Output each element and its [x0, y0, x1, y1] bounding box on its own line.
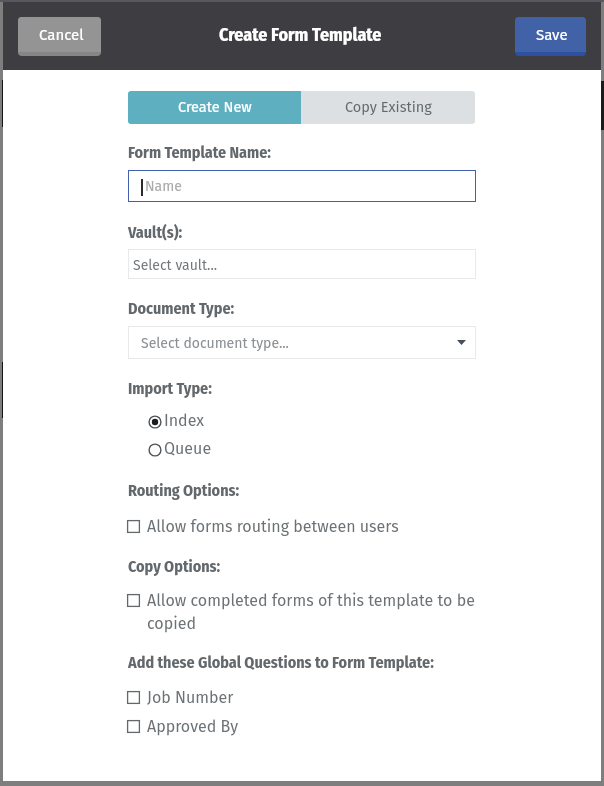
- staticText: Add these Global Questions to Form Templ…: [128, 653, 434, 672]
- staticText: Index: [164, 411, 205, 430]
- staticText: Approved By: [147, 717, 477, 736]
- staticText: Save: [536, 26, 568, 44]
- staticText: Form Template Name:: [128, 143, 271, 162]
- button[interactable]: Job Number: [127, 691, 476, 710]
- staticText: Allow completed forms of this template t…: [147, 591, 479, 633]
- staticText: Cancel: [39, 26, 84, 44]
- staticText: Routing Options:: [128, 481, 240, 500]
- staticText: Import Type:: [128, 379, 212, 398]
- button[interactable]: Select vault...: [129, 250, 475, 278]
- button[interactable]: Index: [148, 415, 268, 435]
- button[interactable]: Name: [129, 171, 475, 201]
- button[interactable]: Create New: [128, 91, 301, 124]
- staticText: Vault(s):: [128, 223, 183, 242]
- staticText: Copy Options:: [128, 557, 221, 576]
- staticText: Document Type:: [128, 299, 235, 318]
- button[interactable]: Allow completed forms of this template t…: [127, 594, 476, 636]
- other: Open document type dropdown: [457, 340, 466, 345]
- button[interactable]: Save: [515, 17, 586, 56]
- staticText: Select document type...: [141, 335, 289, 352]
- staticText: Allow forms routing between users: [147, 517, 477, 536]
- staticText: Create New: [178, 98, 252, 115]
- button[interactable]: Allow forms routing between users: [127, 520, 476, 539]
- button[interactable]: Select document type...: [129, 327, 475, 358]
- staticText: Job Number: [147, 688, 477, 707]
- button[interactable]: Cancel: [18, 17, 101, 56]
- staticText: Select vault...: [133, 257, 218, 274]
- staticText: Name: [145, 178, 182, 195]
- button[interactable]: Copy Existing: [301, 91, 475, 124]
- staticText: Copy Existing: [345, 98, 432, 115]
- staticText: Queue: [164, 439, 212, 458]
- button[interactable]: Approved By: [127, 720, 476, 739]
- staticText: Create Form Template: [219, 24, 382, 46]
- button[interactable]: Queue: [148, 443, 268, 463]
